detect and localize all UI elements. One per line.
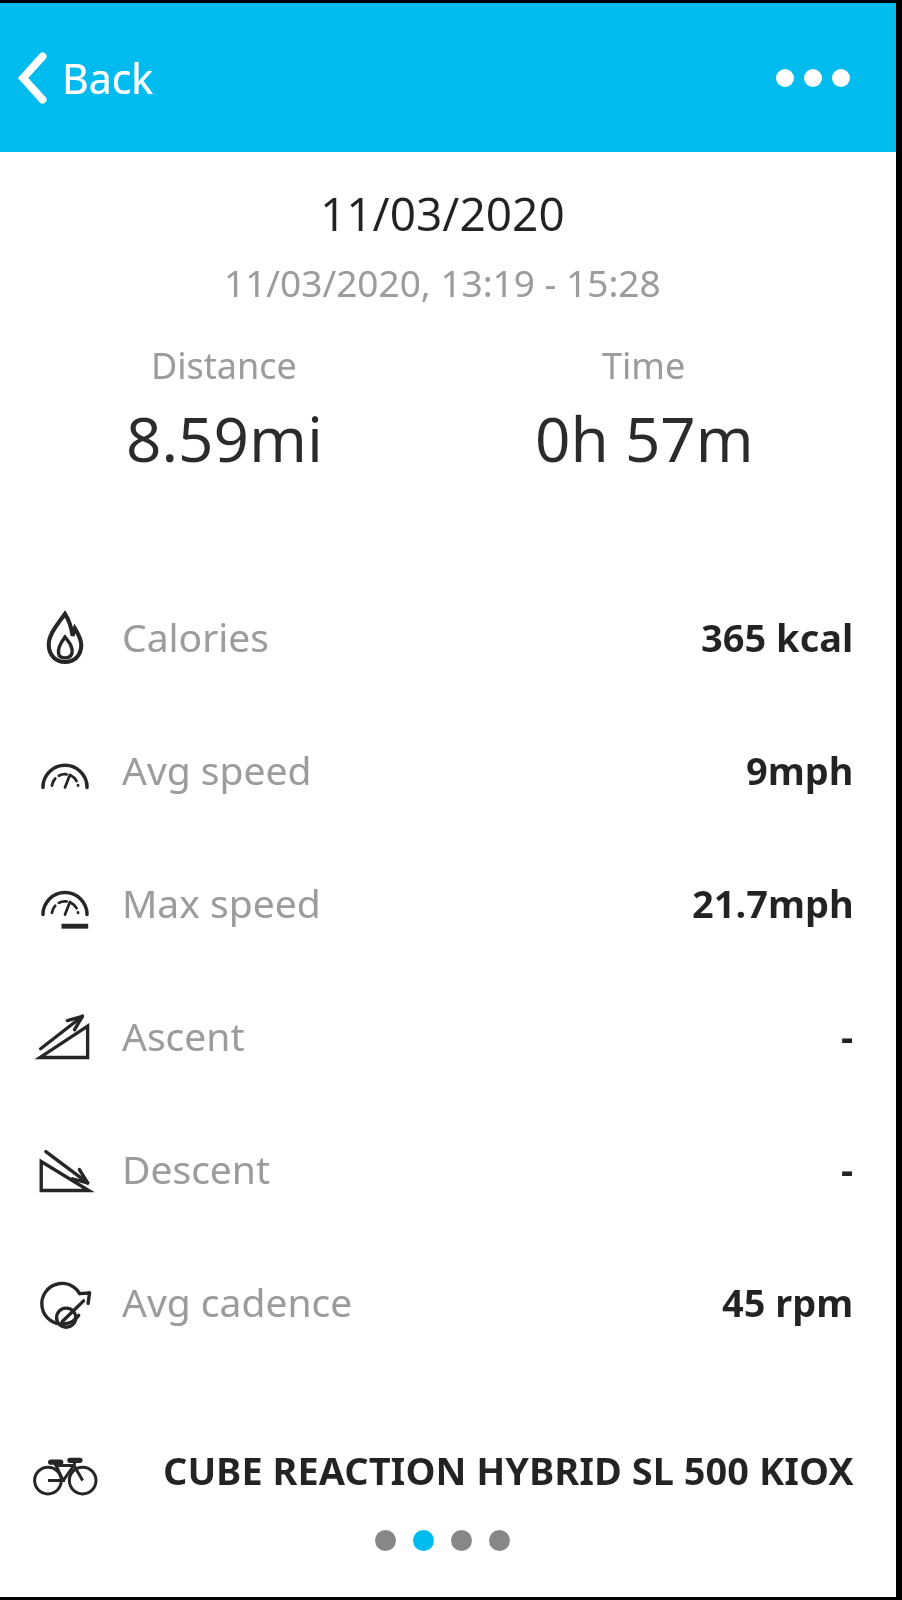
staticText: Time — [602, 341, 686, 390]
staticText: 21.7mph — [692, 877, 854, 929]
staticText: Avg speed — [122, 743, 312, 796]
staticText: 0h 57m — [535, 396, 754, 480]
button[interactable]: Page 1 — [375, 1530, 396, 1551]
button[interactable]: More options — [764, 57, 862, 99]
staticText: 11/03/2020, 13:19 - 15:28 — [224, 257, 661, 307]
staticText: 365 kcal — [701, 611, 854, 663]
staticText: - — [841, 1010, 854, 1062]
staticText: 8.59mi — [126, 396, 323, 480]
staticText: Back — [62, 50, 154, 106]
staticText: Ascent — [122, 1009, 245, 1062]
button[interactable]: Avg speed — [0, 703, 896, 836]
staticText: 11/03/2020 — [320, 182, 565, 245]
staticText: 45 rpm — [722, 1276, 854, 1328]
staticText: Descent — [122, 1142, 271, 1195]
button[interactable]: Max speed — [0, 836, 896, 969]
button[interactable]: Page 4 — [489, 1530, 510, 1551]
staticText: - — [841, 1143, 854, 1195]
staticText: Avg cadence — [122, 1275, 353, 1328]
staticText: 9mph — [746, 744, 854, 796]
button[interactable]: Ascent — [0, 969, 896, 1102]
staticText: CUBE REACTION HYBRID SL 500 KIOX — [163, 1444, 854, 1496]
button[interactable]: Back — [8, 40, 170, 116]
staticText: Max speed — [122, 876, 321, 929]
button[interactable]: Calories — [0, 570, 896, 703]
button[interactable]: Page 3 — [451, 1530, 472, 1551]
button[interactable]: Page 2 — [413, 1530, 434, 1551]
staticText: Distance — [151, 341, 297, 390]
button[interactable]: Descent — [0, 1102, 896, 1235]
button[interactable]: Avg cadence — [0, 1235, 896, 1368]
staticText: Calories — [122, 610, 270, 663]
button[interactable]: CUBE REACTION HYBRID SL 500 KIOX — [0, 1444, 896, 1496]
